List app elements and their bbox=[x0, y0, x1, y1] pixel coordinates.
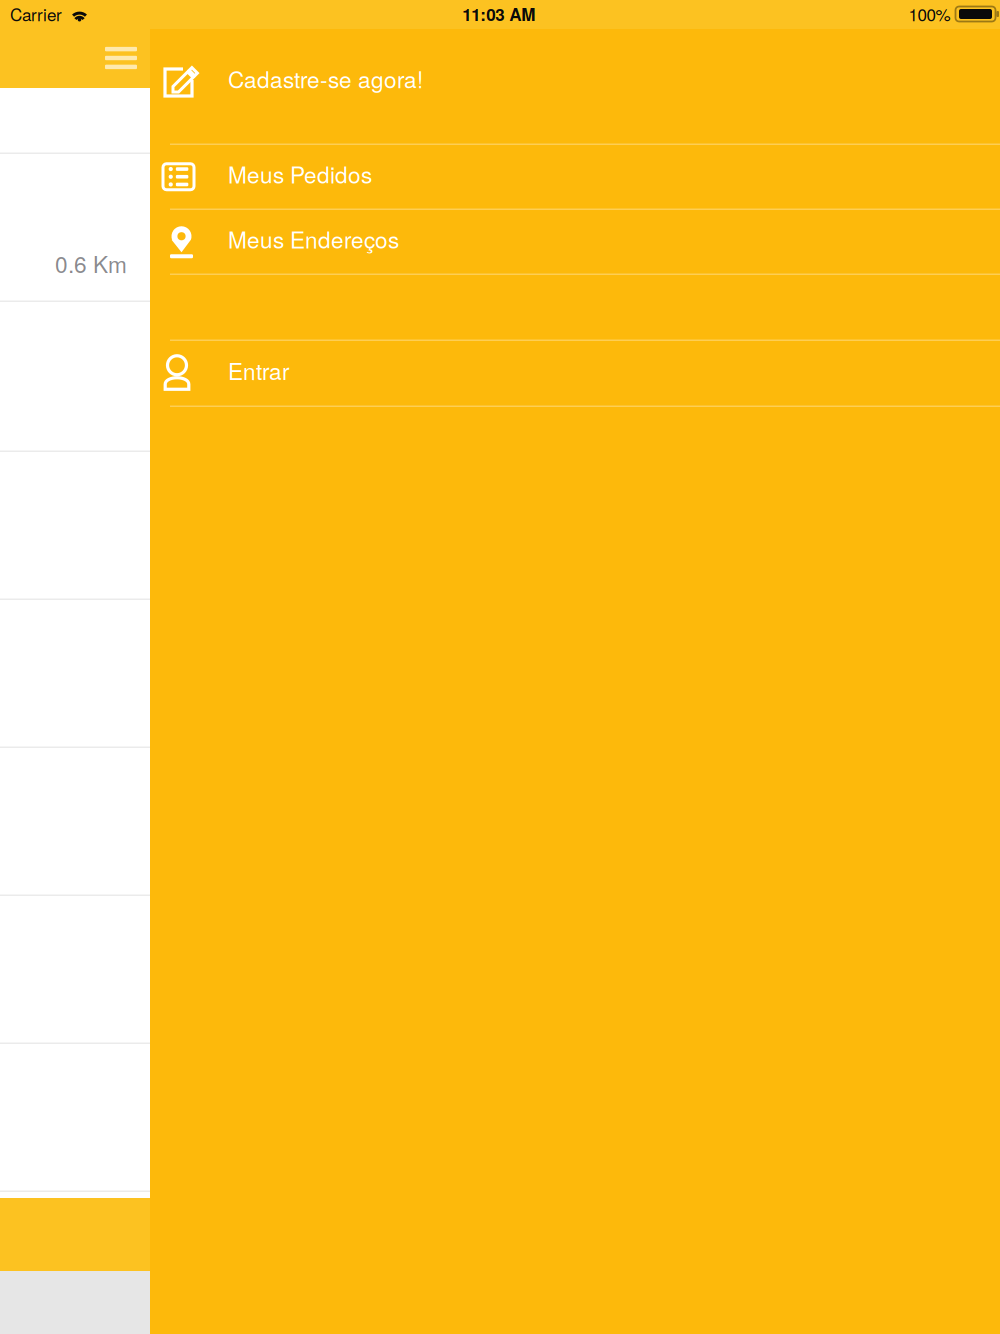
staticText: Meus Endereços bbox=[228, 222, 399, 255]
button[interactable] bbox=[0, 896, 1000, 1044]
button[interactable] bbox=[0, 302, 1000, 452]
staticText: 100% bbox=[908, 2, 950, 26]
staticText: 11:03 AM bbox=[462, 2, 535, 26]
staticText: Carrier bbox=[10, 2, 62, 26]
button[interactable]: Entrar bbox=[150, 341, 1000, 407]
staticText: Cadastre-se agora! bbox=[228, 62, 423, 95]
button[interactable]: Meus Pedidos bbox=[150, 145, 1000, 210]
button[interactable]: Cadastre-se agora! bbox=[150, 29, 1000, 145]
staticText: Meus Pedidos bbox=[228, 157, 372, 190]
button[interactable] bbox=[0, 600, 1000, 748]
staticText: 0.6 Km bbox=[55, 247, 127, 279]
button[interactable] bbox=[0, 748, 1000, 896]
button[interactable] bbox=[0, 88, 1000, 154]
staticText: Entrar bbox=[228, 354, 290, 386]
button[interactable]: 0.6 Km bbox=[0, 154, 1000, 302]
button[interactable] bbox=[0, 1044, 1000, 1192]
button[interactable] bbox=[0, 452, 1000, 600]
button[interactable]: Meus Endereços bbox=[150, 210, 1000, 275]
button[interactable]: Menu bbox=[90, 34, 152, 82]
